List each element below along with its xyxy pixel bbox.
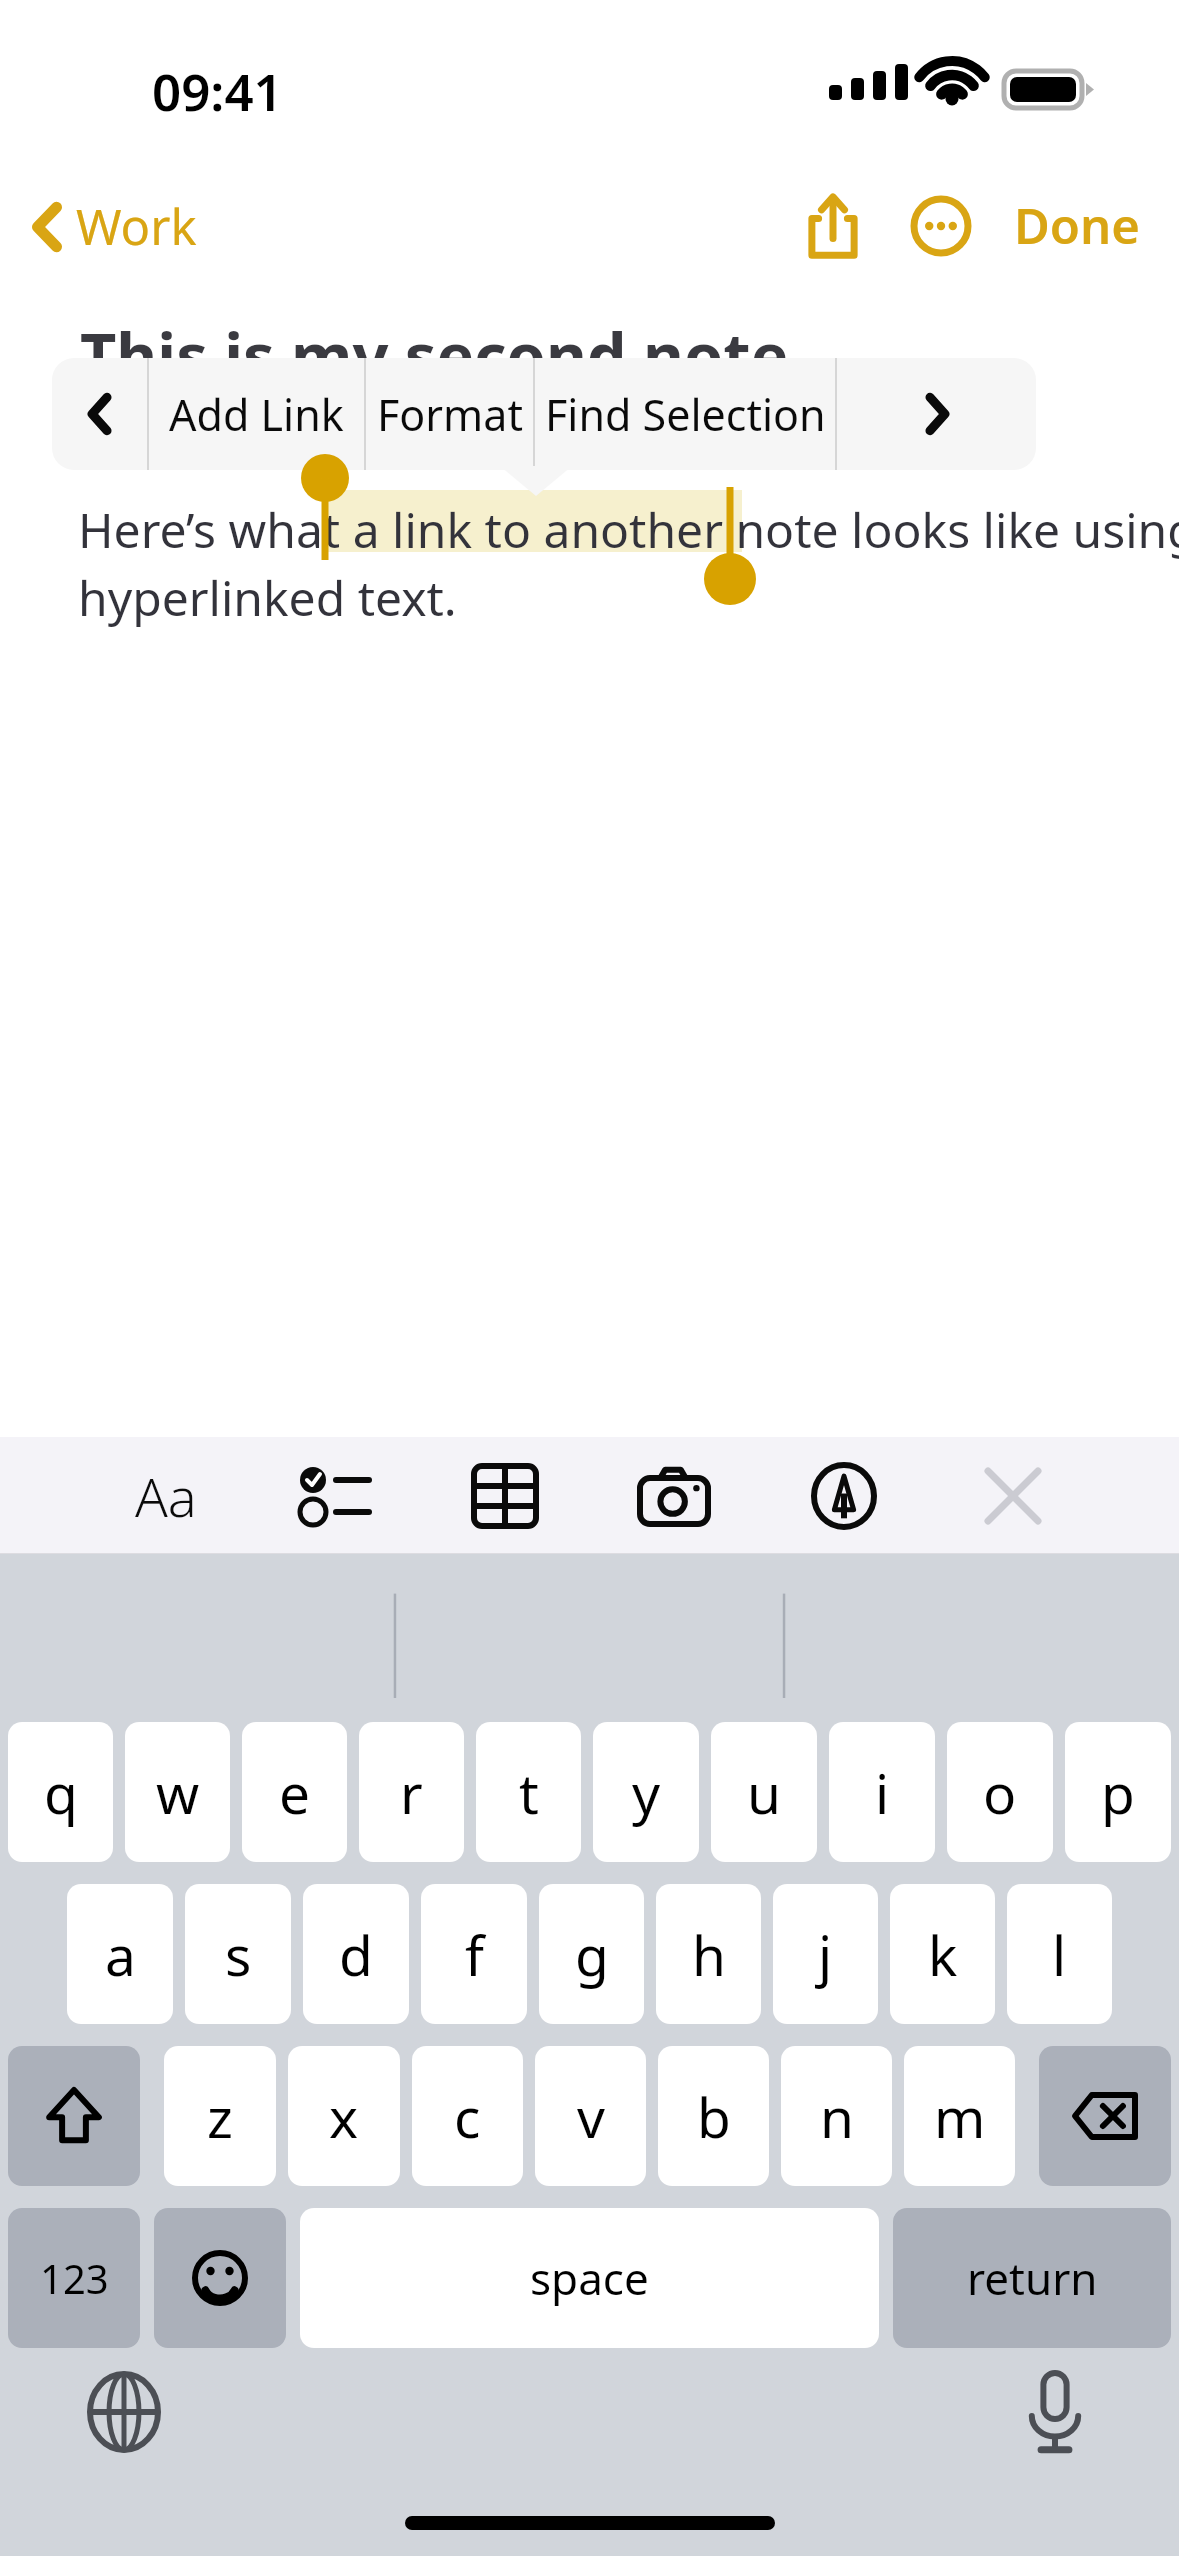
staticText: Work <box>76 193 197 260</box>
staticText: y <box>632 1755 661 1830</box>
staticText: e <box>279 1755 311 1830</box>
button[interactable]: Close keyboard <box>965 1448 1061 1544</box>
button[interactable]: Markup <box>796 1448 892 1544</box>
button[interactable]: h <box>656 1884 761 2024</box>
staticText: Aa <box>135 1459 197 1533</box>
button[interactable]: s <box>185 1884 291 2024</box>
staticText: q <box>44 1755 78 1830</box>
button[interactable]: w <box>125 1722 230 1862</box>
staticText: r <box>400 1755 423 1830</box>
button[interactable]: e <box>242 1722 347 1862</box>
button[interactable]: j <box>773 1884 878 2024</box>
button[interactable]: Change keyboard <box>78 2366 170 2458</box>
button[interactable]: d <box>303 1884 409 2024</box>
button[interactable]: 123 <box>8 2208 140 2348</box>
button[interactable]: Table <box>457 1448 553 1544</box>
button[interactable]: i <box>829 1722 935 1862</box>
staticText: i <box>875 1755 890 1830</box>
staticText: Add Link <box>169 385 344 444</box>
button[interactable]: t <box>476 1722 581 1862</box>
button[interactable]: g <box>539 1884 644 2024</box>
staticText: l <box>1052 1917 1067 1992</box>
staticText: a <box>105 1917 136 1992</box>
button[interactable]: x <box>288 2046 400 2186</box>
staticText: f <box>465 1917 484 1992</box>
button[interactable]: y <box>593 1722 699 1862</box>
button[interactable]: Backspace <box>1039 2046 1171 2186</box>
staticText: b <box>697 2079 731 2154</box>
staticText: Find Selection <box>545 385 826 444</box>
staticText: o <box>983 1755 1017 1830</box>
staticText: w <box>156 1755 200 1830</box>
staticText: This is my second note <box>80 312 789 398</box>
staticText: p <box>1101 1755 1135 1830</box>
button[interactable]: r <box>359 1722 464 1862</box>
staticText: v <box>577 2079 605 2154</box>
button[interactable]: z <box>164 2046 276 2186</box>
button[interactable]: n <box>781 2046 892 2186</box>
button[interactable]: Text formatting <box>118 1448 214 1544</box>
staticText: d <box>339 1917 373 1992</box>
button[interactable]: space <box>300 2208 879 2348</box>
button[interactable]: a <box>67 1884 173 2024</box>
button[interactable]: return <box>893 2208 1171 2348</box>
staticText: 09:41 <box>152 56 283 125</box>
staticText: z <box>207 2079 233 2154</box>
staticText: c <box>454 2079 481 2154</box>
staticText: x <box>329 2079 359 2154</box>
button[interactable]: Next <box>837 358 1036 470</box>
button[interactable]: Dictation <box>1009 2366 1101 2458</box>
staticText: k <box>928 1917 958 1992</box>
staticText: 123 <box>40 2251 109 2305</box>
button[interactable]: o <box>947 1722 1053 1862</box>
button[interactable]: Shift <box>8 2046 140 2186</box>
staticText: Format <box>377 385 523 444</box>
button[interactable]: Add Link <box>149 358 364 470</box>
staticText: space <box>530 2248 649 2308</box>
button[interactable]: b <box>658 2046 769 2186</box>
button[interactable]: Camera <box>626 1448 722 1544</box>
button[interactable]: l <box>1007 1884 1112 2024</box>
button[interactable]: Previous <box>52 358 147 470</box>
staticText: j <box>818 1917 833 1992</box>
staticText: Done <box>1014 192 1141 259</box>
staticText: n <box>820 2079 854 2154</box>
staticText: return <box>967 2248 1098 2308</box>
staticText: t <box>519 1755 539 1830</box>
staticText: u <box>747 1755 781 1830</box>
staticText: hyperlinked text. <box>78 565 457 630</box>
button[interactable]: Work <box>22 185 205 268</box>
button[interactable]: m <box>904 2046 1015 2186</box>
button[interactable]: p <box>1065 1722 1171 1862</box>
button[interactable]: k <box>890 1884 995 2024</box>
button[interactable]: f <box>421 1884 527 2024</box>
button[interactable]: Find Selection <box>535 358 835 470</box>
button[interactable]: Emoji <box>154 2208 286 2348</box>
staticText: h <box>692 1917 726 1992</box>
button[interactable]: Checklist <box>287 1448 383 1544</box>
button[interactable]: Share <box>790 183 876 269</box>
staticText: m <box>934 2079 986 2154</box>
staticText: Here’s what a link to another note looks… <box>78 497 1179 562</box>
button[interactable]: q <box>8 1722 113 1862</box>
button[interactable]: c <box>412 2046 523 2186</box>
staticText: s <box>225 1917 252 1992</box>
button[interactable]: u <box>711 1722 817 1862</box>
button[interactable]: v <box>535 2046 646 2186</box>
button[interactable]: Format <box>366 358 533 470</box>
button[interactable]: Done <box>1004 178 1151 273</box>
button[interactable]: More options <box>898 183 984 269</box>
staticText: g <box>575 1917 609 1992</box>
